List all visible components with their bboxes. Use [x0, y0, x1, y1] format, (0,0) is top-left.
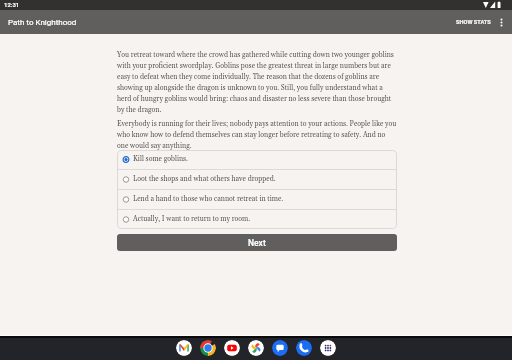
staticText: Lend a hand to those who cannot retreat …: [133, 195, 284, 204]
button[interactable]: Google Photos: [248, 340, 264, 356]
staticText: 12:31: [4, 1, 20, 8]
button[interactable]: More options: [493, 12, 510, 32]
button[interactable]: Lend a hand to those who cannot retreat …: [117, 190, 397, 209]
staticText: Kill some goblins.: [133, 155, 189, 164]
staticText: Loot the shops and what others have drop…: [133, 175, 276, 184]
button[interactable]: Gmail: [176, 340, 192, 356]
button[interactable]: Loot the shops and what others have drop…: [117, 170, 397, 189]
button[interactable]: Messages: [272, 340, 288, 356]
staticText: You retreat toward where the crowd has g…: [117, 51, 397, 114]
button[interactable]: All apps: [320, 340, 336, 356]
button[interactable]: Next: [117, 234, 397, 251]
staticText: SHOW STATS: [456, 19, 491, 26]
button[interactable]: SHOW STATS: [448, 14, 493, 31]
staticText: Next: [248, 238, 266, 248]
button[interactable]: Kill some goblins.: [117, 150, 397, 169]
staticText: Everybody is running for their lives; no…: [117, 120, 397, 150]
button[interactable]: Phone: [296, 340, 312, 356]
button[interactable]: Actually, I want to return to my room.: [117, 210, 397, 229]
button[interactable]: Chrome: [200, 340, 216, 356]
staticText: Path to Knighthood: [8, 18, 77, 27]
button[interactable]: YouTube: [224, 340, 240, 356]
staticText: Actually, I want to return to my room.: [133, 215, 251, 224]
